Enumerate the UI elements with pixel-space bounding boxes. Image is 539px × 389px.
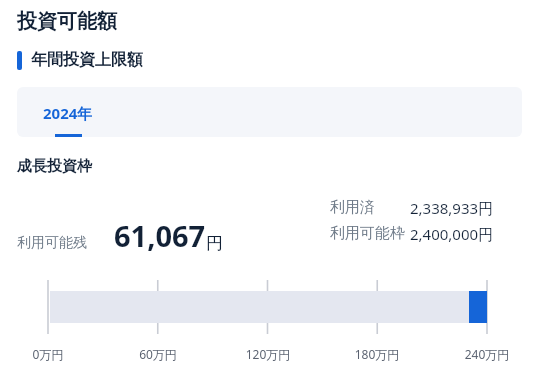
staticText: 利用可能枠 xyxy=(330,224,410,243)
staticText: 60万円 xyxy=(118,346,198,362)
staticText: 180万円 xyxy=(337,346,417,362)
staticText: 2,338,933円 xyxy=(410,198,494,218)
staticText: 年間投資上限額 xyxy=(31,50,143,70)
staticText: 2,400,000円 xyxy=(410,224,510,244)
staticText: 投資可能額 xyxy=(17,9,117,34)
staticText: 2024年 xyxy=(43,103,93,123)
staticText: 0万円 xyxy=(8,346,88,362)
staticText: 円 xyxy=(206,233,223,254)
staticText: 61,067 xyxy=(114,216,206,255)
staticText: 240万円 xyxy=(447,346,527,362)
staticText: 利用済 xyxy=(330,198,410,217)
staticText: 成長投資枠 xyxy=(17,157,92,176)
staticText: 利用可能残 xyxy=(17,234,87,252)
staticText: 120万円 xyxy=(228,346,308,362)
button[interactable]: 2024年 xyxy=(39,87,97,137)
